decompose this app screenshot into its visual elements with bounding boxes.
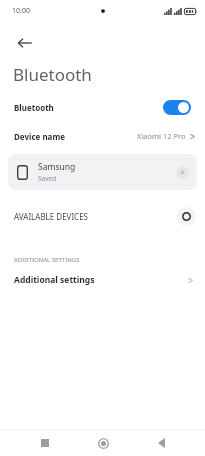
button[interactable]: Device details [176,166,189,179]
button[interactable]: Bluetooth [0,94,205,120]
staticText: 10:00 [12,6,30,16]
button[interactable]: Back [148,430,174,456]
staticText: Samsung [38,161,76,173]
staticText: ADDITIONAL SETTINGS [14,256,80,264]
staticText: Bluetooth [14,102,54,113]
staticText: Bluetooth [13,63,92,86]
button[interactable]: Home [90,430,116,456]
staticText: Device name [14,131,65,142]
staticText: Saved [38,174,57,183]
button[interactable]: Scanning for devices [177,207,196,226]
button[interactable]: Additional settings [0,268,205,292]
button[interactable]: Recents [32,430,58,456]
button[interactable]: Device name [0,124,205,148]
button[interactable]: Samsung [8,154,197,190]
staticText: Additional settings [14,274,95,286]
button[interactable]: Bluetooth on [163,100,191,115]
staticText: Xiaomi 12 Pro [137,131,186,141]
button[interactable]: Back [8,26,42,60]
staticText: AVAILABLE DEVICES [14,211,89,222]
